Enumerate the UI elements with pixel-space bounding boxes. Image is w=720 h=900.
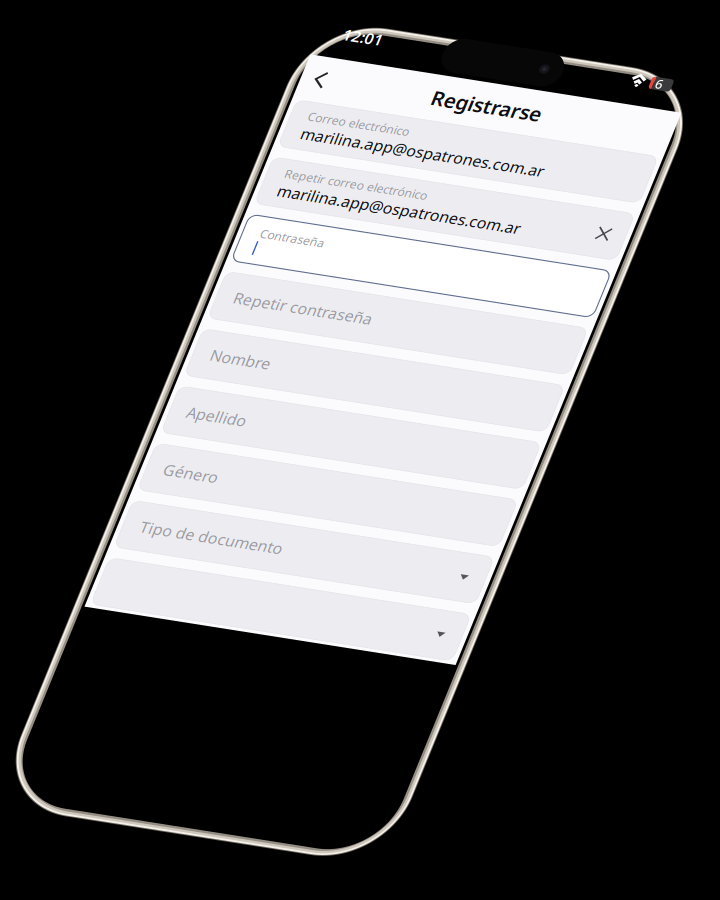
button[interactable]: Correo electrónico xyxy=(0,170,530,242)
button[interactable]: Clear text xyxy=(472,259,524,331)
button[interactable]: Contraseña xyxy=(0,347,530,419)
button[interactable]: Repetir contraseña xyxy=(0,436,530,508)
staticText: Registrarse xyxy=(184,116,345,155)
staticText: Tipo de documento xyxy=(24,811,233,841)
staticText: Repetir correo electrónico xyxy=(24,268,233,291)
button[interactable]: Repetir correo electrónico xyxy=(0,259,530,331)
staticText: Género xyxy=(24,722,104,752)
staticText: marilina.app@ospatrones.com.ar xyxy=(24,203,380,233)
button[interactable]: Género xyxy=(0,701,530,773)
staticText: marilina.app@ospatrones.com.ar xyxy=(24,291,380,322)
button[interactable]: Nombre xyxy=(0,524,530,596)
staticText: Nombre xyxy=(24,545,112,575)
staticText: Apellido xyxy=(24,634,111,664)
staticText: Repetir contraseña xyxy=(24,457,227,487)
button[interactable]: Apellido xyxy=(0,613,530,685)
button[interactable]: Tipo de documento xyxy=(0,790,530,862)
